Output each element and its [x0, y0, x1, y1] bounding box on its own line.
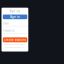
- staticText: Sign up: [9, 9, 20, 13]
- staticText: Password: [3, 29, 15, 32]
- staticText: Terms of Service & Privacy: [5, 47, 24, 48]
- staticText: Sign in: [10, 15, 20, 19]
- staticText: By signing up you agree to our: [4, 44, 25, 45]
- button[interactable]: Create account: [3, 37, 27, 42]
- button[interactable]: Terms of Service & Privacy: [1, 47, 28, 48]
- staticText: Email: [3, 22, 9, 25]
- staticText: Create account: [4, 38, 26, 41]
- button[interactable]: Sign in: [3, 14, 27, 19]
